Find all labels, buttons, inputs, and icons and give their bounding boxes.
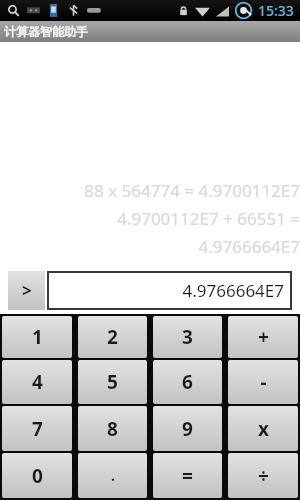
staticText: 88 x 564774 = 4.9700112E7	[0, 179, 300, 202]
button[interactable]: x	[228, 406, 298, 451]
staticText: 4.9700112E7 + 66551 =	[0, 207, 300, 230]
staticText: 8	[107, 416, 118, 442]
button[interactable]: 5	[78, 360, 147, 404]
button[interactable]: -	[228, 360, 298, 404]
button[interactable]: Expand history	[8, 271, 45, 310]
button[interactable]: 9	[153, 406, 222, 451]
staticText: 7	[32, 416, 43, 442]
staticText: 0	[32, 463, 43, 489]
staticText: 5	[107, 369, 118, 395]
staticText: 1	[32, 324, 43, 350]
button[interactable]: 2	[78, 316, 147, 358]
staticText: >	[22, 279, 32, 302]
button[interactable]: .	[78, 453, 147, 498]
staticText: 15:33	[258, 1, 294, 20]
staticText: =	[182, 463, 193, 489]
button[interactable]: 1	[2, 316, 72, 358]
staticText: 3	[182, 324, 193, 350]
button[interactable]: 4	[2, 360, 72, 404]
button[interactable]: 0	[2, 453, 72, 498]
staticText: x	[258, 416, 269, 442]
button[interactable]: +	[228, 316, 298, 358]
button[interactable]: ÷	[228, 453, 298, 498]
staticText: .	[111, 466, 115, 485]
staticText: +	[258, 324, 269, 350]
staticText: ÷	[258, 463, 269, 489]
button[interactable]: 3	[153, 316, 222, 358]
staticText: 4	[32, 369, 43, 395]
staticText: 4.9766664E7	[182, 279, 284, 302]
staticText: 9	[182, 416, 193, 442]
staticText: 2	[107, 324, 118, 350]
staticText: 计算器智能助手	[4, 24, 88, 39]
button[interactable]: =	[153, 453, 222, 498]
button[interactable]: 7	[2, 406, 72, 451]
button[interactable]: 8	[78, 406, 147, 451]
staticText: -	[260, 369, 267, 395]
staticText: 4.9766664E7	[0, 235, 300, 258]
staticText: 6	[182, 369, 193, 395]
button[interactable]: 4.9766664E7	[47, 271, 292, 310]
button[interactable]: 6	[153, 360, 222, 404]
